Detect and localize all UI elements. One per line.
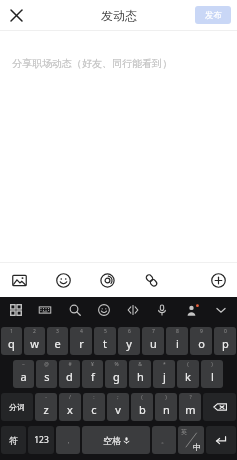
button[interactable]: ， <box>56 426 80 454</box>
button[interactable]: 空格 <box>82 426 150 454</box>
staticText: - <box>45 394 47 401</box>
button[interactable]: Emoji <box>52 269 74 291</box>
button[interactable]: # <box>59 360 80 388</box>
staticText: 中 <box>193 442 201 452</box>
staticText: 符 <box>9 435 18 446</box>
staticText: e <box>54 336 61 351</box>
button[interactable]: Emoji <box>94 300 114 320</box>
button[interactable]: 6 <box>118 327 140 355</box>
staticText: p <box>222 336 229 351</box>
staticText: q <box>8 336 15 351</box>
staticText: ( <box>141 394 143 401</box>
staticText: / <box>69 394 71 401</box>
button[interactable]: ) <box>201 360 223 388</box>
button[interactable]: ( <box>177 360 199 388</box>
staticText: 2 <box>33 328 36 335</box>
button[interactable]: @ <box>36 360 57 388</box>
button[interactable]: 5 <box>94 327 116 355</box>
button[interactable]: Translate <box>123 300 143 320</box>
staticText: d <box>66 369 73 384</box>
button[interactable]: 2 <box>24 327 45 355</box>
button[interactable]: % <box>105 360 127 388</box>
staticText: ， <box>65 436 72 445</box>
button[interactable]: / <box>59 393 81 421</box>
staticText: 5 <box>104 328 107 335</box>
staticText: c <box>91 402 97 417</box>
button[interactable]: ? <box>179 393 201 421</box>
staticText: o <box>198 336 205 351</box>
staticText: @ <box>44 361 49 368</box>
staticText: 发布 <box>205 10 222 21</box>
staticText: a <box>20 369 27 384</box>
staticText: u <box>150 336 157 351</box>
button[interactable]: 3 <box>47 327 68 355</box>
staticText: 分词 <box>9 402 25 412</box>
staticText: 7 <box>152 328 155 335</box>
staticText: j <box>163 369 166 384</box>
button[interactable]: Account <box>182 300 202 320</box>
button[interactable]: ~ <box>13 360 34 388</box>
button[interactable]: 7 <box>142 327 164 355</box>
staticText: m <box>185 402 196 417</box>
staticText: 空格 <box>103 435 121 446</box>
staticText: ; <box>117 394 119 401</box>
staticText: y <box>126 336 132 351</box>
staticText: : <box>93 394 95 401</box>
button[interactable]: Keyboard panels <box>6 300 26 320</box>
button[interactable]: ( <box>131 393 153 421</box>
button[interactable]: ¥ <box>82 360 103 388</box>
staticText: s <box>44 369 50 384</box>
button[interactable]: 分享职场动态（好友、同行能看到） <box>0 31 237 262</box>
staticText: 9 <box>200 328 203 335</box>
button[interactable]: Enter <box>206 426 236 454</box>
staticText: h <box>137 369 144 384</box>
button[interactable]: Hide keyboard <box>211 300 231 320</box>
button[interactable]: - <box>35 393 57 421</box>
staticText: g <box>113 369 120 384</box>
staticText: t <box>103 336 107 351</box>
staticText: 分享职场动态（好友、同行能看到） <box>12 57 172 70</box>
staticText: & <box>138 361 142 368</box>
staticText: 123 <box>34 434 49 446</box>
staticText: 英 <box>181 428 187 436</box>
button[interactable]: : <box>83 393 105 421</box>
button[interactable]: 0 <box>214 327 236 355</box>
button[interactable]: & <box>129 360 151 388</box>
button[interactable]: 4 <box>70 327 92 355</box>
button[interactable]: Backspace <box>203 393 236 421</box>
button[interactable]: Switch input language <box>178 426 204 454</box>
button[interactable]: Search <box>65 300 85 320</box>
button[interactable]: 符 <box>1 426 26 454</box>
button[interactable]: Voice input <box>152 300 172 320</box>
button[interactable]: ; <box>107 393 129 421</box>
button[interactable]: 分词 <box>1 393 33 421</box>
button[interactable]: More options <box>207 269 229 291</box>
button[interactable]: 1 <box>1 327 22 355</box>
staticText: v <box>115 402 121 417</box>
staticText: w <box>30 336 39 351</box>
staticText: 3 <box>56 328 59 335</box>
button[interactable]: 123 <box>28 426 54 454</box>
staticText: k <box>185 369 191 384</box>
staticText: 8 <box>176 328 179 335</box>
button[interactable]: Keyboard layout <box>35 300 55 320</box>
button[interactable]: * <box>153 360 175 388</box>
button[interactable]: 8 <box>166 327 188 355</box>
staticText: ~ <box>22 361 25 368</box>
button[interactable]: 9 <box>190 327 212 355</box>
button[interactable]: 。 <box>152 426 176 454</box>
staticText: ¥ <box>91 361 94 368</box>
staticText: b <box>139 402 146 417</box>
staticText: % <box>114 361 119 368</box>
button[interactable]: Close <box>5 4 27 26</box>
staticText: 发动态 <box>101 8 137 23</box>
button[interactable]: ) <box>155 393 177 421</box>
staticText: ? <box>189 394 192 401</box>
staticText: ) <box>211 361 213 368</box>
button[interactable]: Insert link <box>140 269 162 291</box>
staticText: # <box>68 361 72 368</box>
button[interactable]: Add image <box>8 269 30 291</box>
button[interactable]: 发布 <box>195 6 231 24</box>
button[interactable]: Mention someone <box>96 269 118 291</box>
staticText: l <box>211 369 214 384</box>
